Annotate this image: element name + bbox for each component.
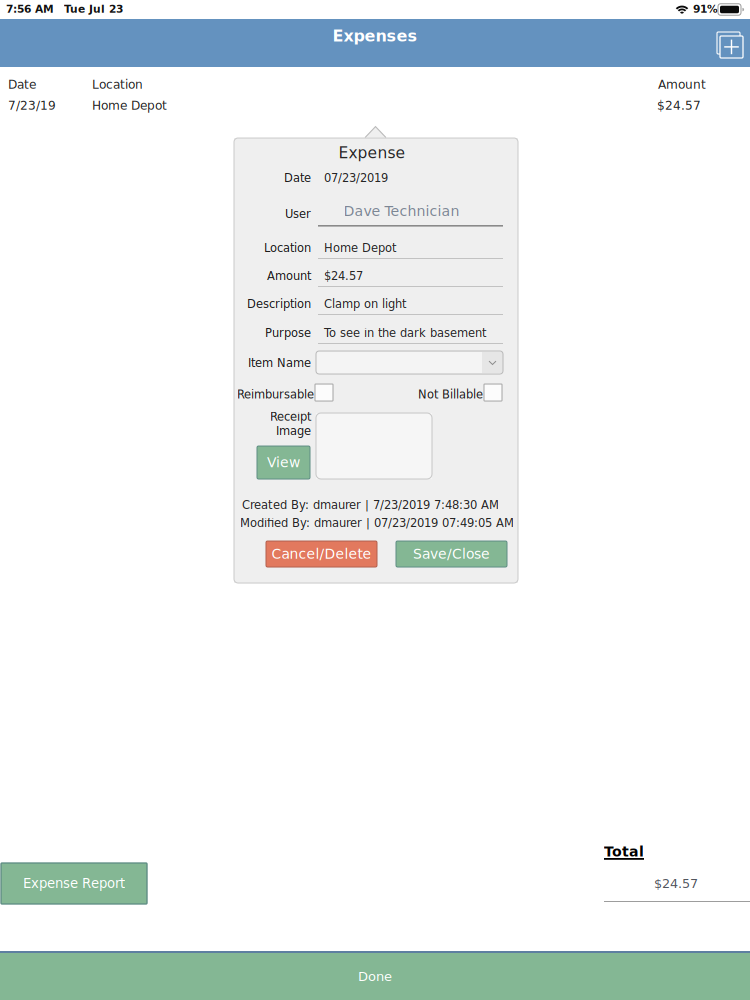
staticText: View	[267, 454, 300, 470]
button[interactable]: Item Name	[316, 351, 503, 374]
staticText: Purpose	[265, 326, 311, 340]
staticText: Dave Technician	[343, 203, 459, 219]
button[interactable]: Expense Report	[1, 863, 147, 904]
staticText: Description	[247, 297, 311, 311]
button[interactable]: Reimbursable	[237, 384, 333, 405]
staticText: Reimbursable	[237, 388, 314, 401]
staticText: Expense	[338, 144, 405, 162]
button[interactable]: Save/Close	[396, 541, 507, 567]
staticText: 91%	[693, 3, 718, 15]
staticText: Save/Close	[413, 546, 490, 562]
staticText: Item Name	[248, 356, 311, 370]
staticText: To see in the dark basement	[324, 326, 486, 340]
staticText: Amount	[267, 269, 311, 283]
staticText: Home Depot	[324, 241, 396, 255]
staticText: Receipt	[270, 410, 311, 423]
staticText: Home Depot	[92, 98, 167, 112]
staticText: $24.57	[654, 876, 698, 891]
staticText: Location	[92, 77, 143, 91]
staticText: Not Billable	[418, 388, 483, 401]
button[interactable]: Not Billable	[418, 384, 502, 405]
staticText: Modified By: dmaurer | 07/23/2019 07:49:…	[240, 516, 514, 530]
button[interactable]: Done	[0, 953, 750, 1000]
staticText: 7:56 AM	[6, 3, 54, 15]
staticText: Created By: dmaurer | 7/23/2019 7:48:30 …	[242, 498, 499, 512]
staticText: $24.57	[324, 269, 363, 283]
staticText: Done	[358, 969, 392, 984]
staticText: Amount	[658, 77, 706, 91]
staticText: Date	[8, 77, 36, 91]
button[interactable]: 7/23/19	[0, 96, 750, 116]
staticText: Expense Report	[23, 876, 125, 891]
staticText: 07/23/2019	[324, 171, 388, 185]
staticText: Clamp on light	[324, 297, 406, 311]
staticText: 7/23/19	[8, 98, 56, 112]
staticText: Tue Jul 23	[64, 3, 123, 15]
button[interactable]: New expense	[710, 24, 750, 68]
staticText: Image	[276, 424, 311, 438]
staticText: Cancel/Delete	[271, 546, 371, 562]
button[interactable]: Cancel/Delete	[266, 541, 377, 567]
staticText: User	[285, 207, 311, 221]
staticText: Expenses	[332, 27, 417, 45]
button[interactable]: View	[257, 446, 310, 479]
staticText: Total	[604, 843, 644, 860]
staticText: Date	[284, 171, 311, 185]
staticText: $24.57	[657, 98, 701, 112]
staticText: Location	[264, 241, 311, 255]
